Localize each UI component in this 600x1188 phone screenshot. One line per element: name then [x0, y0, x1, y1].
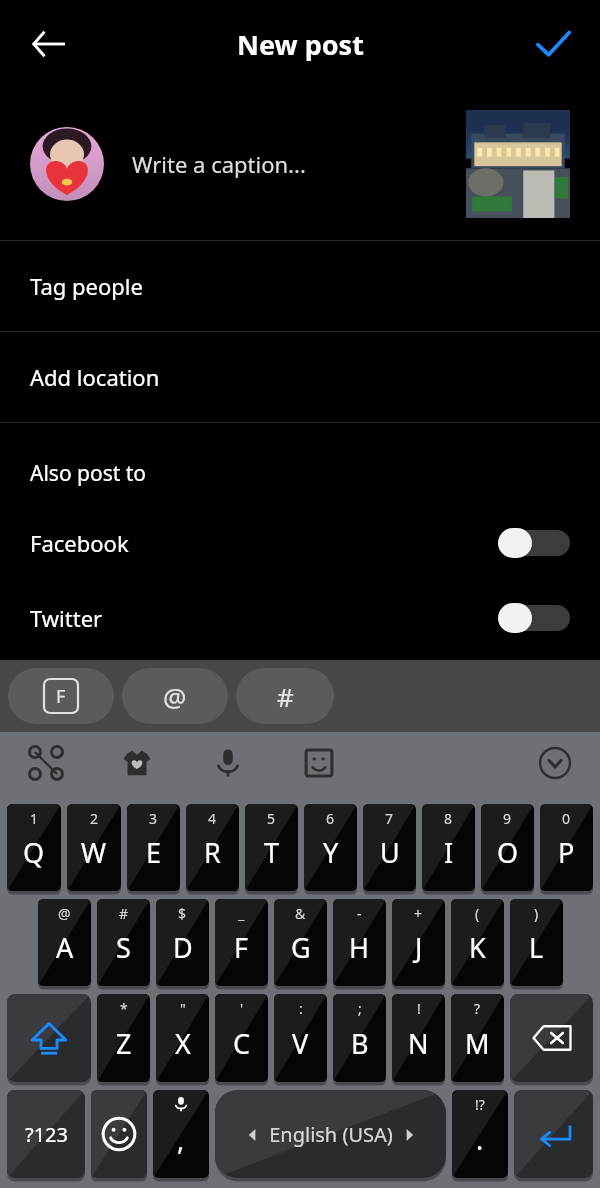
- staticText: Twitter: [30, 603, 103, 633]
- staticText: ): [534, 904, 539, 923]
- button[interactable]: 1: [7, 804, 61, 891]
- staticText: T: [264, 834, 280, 871]
- button[interactable]: :: [274, 994, 327, 1082]
- staticText: C: [233, 1025, 251, 1062]
- staticText: *: [120, 999, 128, 1018]
- staticText: ,: [177, 1121, 185, 1158]
- button[interactable]: Emoji: [91, 1090, 147, 1178]
- staticText: 7: [385, 809, 394, 828]
- button[interactable]: #: [236, 668, 334, 724]
- staticText: #: [277, 679, 294, 714]
- staticText: ': [240, 999, 244, 1018]
- button[interactable]: 9: [481, 804, 534, 891]
- button[interactable]: 4: [186, 804, 239, 891]
- button[interactable]: Collapse: [509, 732, 600, 794]
- staticText: New post: [237, 26, 364, 63]
- staticText: ": [180, 999, 186, 1018]
- staticText: F: [234, 929, 249, 966]
- button[interactable]: 2: [67, 804, 121, 891]
- button[interactable]: +: [392, 899, 445, 986]
- staticText: _: [238, 904, 245, 923]
- staticText: Z: [116, 1025, 132, 1062]
- button[interactable]: $: [156, 899, 209, 986]
- staticText: E: [146, 834, 162, 871]
- staticText: Add location: [30, 362, 160, 392]
- button[interactable]: ;: [333, 994, 386, 1082]
- button[interactable]: Emoji sticker: [273, 732, 364, 794]
- button[interactable]: 7: [363, 804, 416, 891]
- staticText: ?123: [25, 1121, 68, 1148]
- staticText: Also post to: [30, 459, 147, 488]
- staticText: @: [58, 904, 71, 923]
- staticText: #: [119, 904, 129, 923]
- button[interactable]: Backspace: [510, 994, 593, 1082]
- staticText: &: [295, 904, 306, 923]
- button[interactable]: Share post: [524, 15, 582, 73]
- button[interactable]: !?: [452, 1090, 508, 1178]
- button[interactable]: ,: [153, 1090, 209, 1178]
- button[interactable]: 8: [422, 804, 475, 891]
- staticText: 4: [208, 809, 217, 828]
- button[interactable]: ': [215, 994, 268, 1082]
- staticText: !: [417, 999, 421, 1018]
- button[interactable]: Write a caption...: [0, 88, 600, 240]
- staticText: 0: [562, 809, 571, 828]
- button[interactable]: ": [156, 994, 209, 1082]
- staticText: N: [408, 1025, 429, 1062]
- button[interactable]: 6: [304, 804, 357, 891]
- button[interactable]: Shift: [7, 994, 91, 1082]
- button[interactable]: Space: [215, 1090, 446, 1178]
- staticText: 1: [30, 809, 39, 828]
- staticText: Tag people: [30, 271, 143, 301]
- button[interactable]: &: [274, 899, 327, 986]
- staticText: Write a caption...: [132, 149, 306, 179]
- button[interactable]: 5: [245, 804, 298, 891]
- button[interactable]: Apps: [0, 732, 91, 794]
- button[interactable]: ): [510, 899, 563, 986]
- staticText: @: [163, 679, 187, 714]
- staticText: B: [351, 1025, 369, 1062]
- button[interactable]: Add location: [0, 332, 600, 422]
- staticText: S: [116, 929, 131, 966]
- button[interactable]: @: [38, 899, 91, 986]
- staticText: +: [414, 904, 423, 923]
- staticText: 3: [149, 809, 158, 828]
- staticText: W: [81, 834, 107, 871]
- button[interactable]: ?: [451, 994, 504, 1082]
- button[interactable]: _: [215, 899, 268, 986]
- staticText: 9: [503, 809, 512, 828]
- staticText: 8: [444, 809, 453, 828]
- button[interactable]: Tag people: [0, 241, 600, 331]
- staticText: (: [475, 904, 480, 923]
- staticText: H: [349, 929, 370, 966]
- staticText: M: [465, 1025, 490, 1062]
- button[interactable]: F: [8, 668, 114, 724]
- staticText: P: [558, 834, 575, 871]
- button[interactable]: !: [392, 994, 445, 1082]
- staticText: L: [529, 929, 544, 966]
- staticText: $: [178, 904, 187, 923]
- button[interactable]: 3: [127, 804, 180, 891]
- staticText: Facebook: [30, 528, 129, 558]
- staticText: Q: [23, 834, 45, 871]
- staticText: I: [444, 834, 454, 871]
- button[interactable]: *: [97, 994, 150, 1082]
- staticText: U: [380, 834, 400, 871]
- staticText: K: [469, 929, 486, 966]
- staticText: J: [415, 929, 423, 966]
- button[interactable]: Stickers: [91, 732, 182, 794]
- button[interactable]: 0: [540, 804, 593, 891]
- button[interactable]: Back: [22, 17, 76, 71]
- button[interactable]: Facebook: [0, 505, 600, 580]
- button[interactable]: Symbols: [7, 1090, 85, 1178]
- button[interactable]: #: [97, 899, 150, 986]
- button[interactable]: (: [451, 899, 504, 986]
- button[interactable]: @: [122, 668, 228, 724]
- button[interactable]: Enter: [514, 1090, 593, 1178]
- staticText: ;: [358, 999, 362, 1018]
- staticText: ?: [474, 999, 481, 1018]
- staticText: D: [173, 929, 193, 966]
- button[interactable]: -: [333, 899, 386, 986]
- button[interactable]: Voice input: [182, 732, 273, 794]
- button[interactable]: Twitter: [0, 580, 600, 655]
